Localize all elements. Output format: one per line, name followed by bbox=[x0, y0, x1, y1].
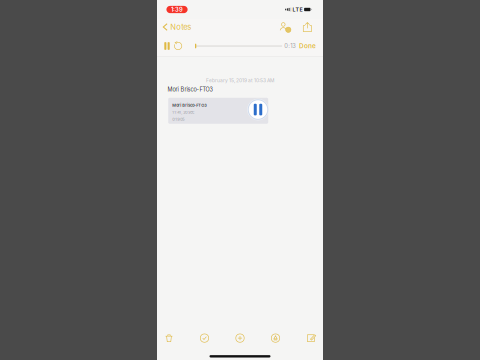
staticText: Mori Brisco-FTO3 bbox=[167, 86, 212, 93]
button[interactable]: Markup bbox=[263, 331, 287, 345]
staticText: 0:19:05 bbox=[172, 117, 184, 122]
staticText: LTE bbox=[292, 6, 302, 13]
button[interactable]: Skip back 15 seconds bbox=[172, 40, 184, 52]
button[interactable]: Add attachment bbox=[228, 331, 252, 345]
button[interactable]: New note bbox=[299, 331, 323, 345]
button[interactable]: Add People bbox=[277, 20, 292, 34]
button[interactable]: Notes bbox=[160, 20, 194, 34]
staticText: Mori Brisco-FTO3 bbox=[172, 103, 207, 108]
button[interactable]: Mori Brisco-FTO3 bbox=[168, 98, 268, 124]
staticText: 11:41, 20 sec bbox=[172, 110, 194, 115]
button[interactable]: Pause bbox=[163, 40, 171, 51]
button[interactable]: Delete bbox=[157, 331, 181, 345]
button[interactable]: Share bbox=[301, 20, 314, 34]
staticText: 1:39 bbox=[171, 6, 183, 13]
staticText: February 15, 2019 at 10:53 AM bbox=[206, 77, 274, 83]
staticText: 0:13 bbox=[284, 42, 296, 49]
staticText: Done bbox=[299, 42, 316, 50]
button[interactable]: Done bbox=[296, 40, 319, 52]
staticText: Notes bbox=[170, 22, 191, 32]
button[interactable]: Checklist bbox=[192, 331, 216, 345]
